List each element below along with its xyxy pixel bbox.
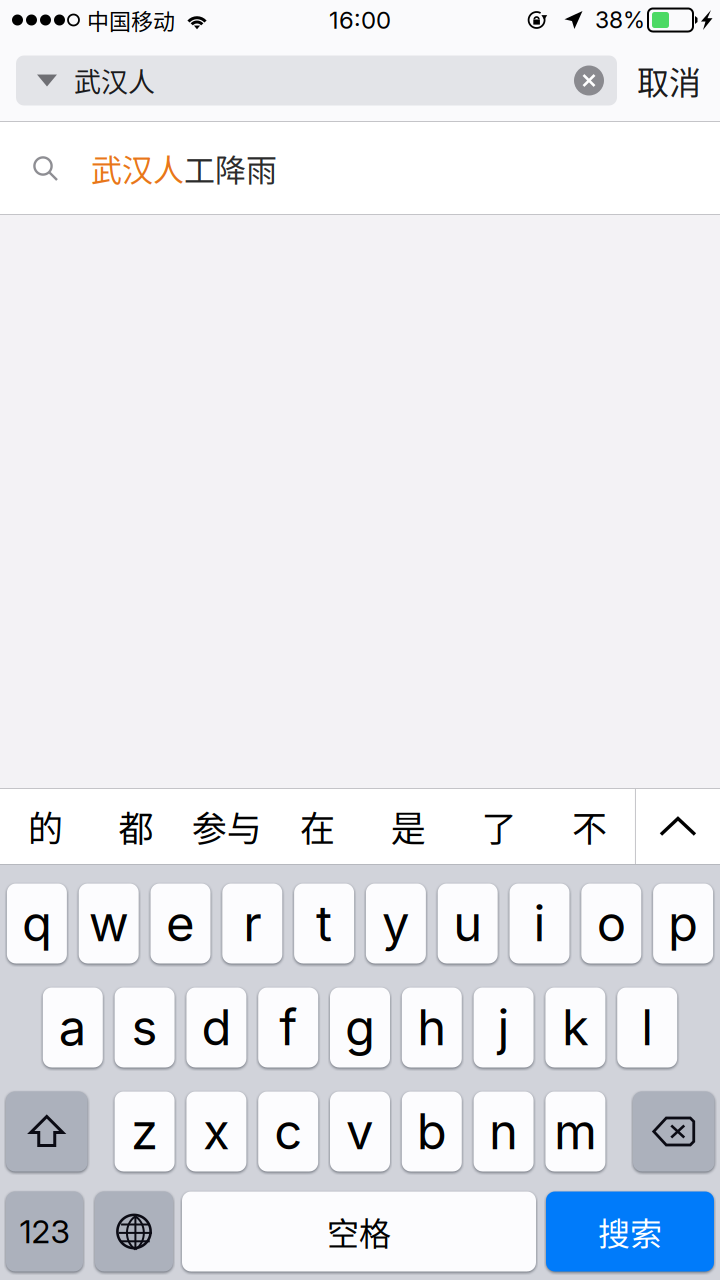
button[interactable]: t (294, 883, 354, 963)
staticText: x (203, 1102, 230, 1161)
staticText: o (597, 894, 626, 953)
staticText: r (243, 894, 261, 953)
button[interactable]: l (617, 987, 677, 1067)
button[interactable]: More candidates (636, 789, 720, 864)
button[interactable]: 不 (544, 789, 635, 864)
button[interactable]: y (366, 883, 426, 963)
button[interactable]: 武汉人 (0, 122, 720, 214)
staticText: g (345, 998, 375, 1057)
button[interactable]: u (438, 883, 498, 963)
button[interactable]: 了 (453, 789, 544, 864)
staticText: c (274, 1102, 302, 1161)
staticText: y (382, 894, 410, 953)
staticText: 不 (572, 801, 607, 852)
button[interactable]: Switch keyboard (95, 1191, 173, 1271)
staticText: 都 (119, 801, 154, 852)
button[interactable]: c (258, 1091, 318, 1171)
staticText: 取消 (637, 57, 701, 104)
staticText: 是 (391, 801, 426, 852)
staticText: 中国移动 (87, 4, 175, 36)
staticText: e (166, 894, 195, 953)
staticText: 在 (300, 801, 335, 852)
button[interactable]: v (330, 1091, 390, 1171)
staticText: 武汉人 (74, 61, 155, 100)
button[interactable]: m (545, 1091, 605, 1171)
staticText: v (346, 1102, 374, 1161)
staticText: p (668, 894, 698, 953)
button[interactable]: 取消 (626, 55, 712, 105)
staticText: j (498, 998, 510, 1057)
staticText: 16:00 (329, 5, 391, 34)
button[interactable]: 是 (363, 789, 453, 864)
button[interactable]: p (653, 883, 713, 963)
staticText: w (89, 894, 129, 953)
staticText: u (453, 894, 482, 953)
staticText: 38% (595, 6, 645, 34)
button[interactable]: 123 (6, 1191, 83, 1271)
button[interactable]: k (545, 987, 605, 1067)
staticText: 的 (28, 801, 63, 852)
staticText: m (554, 1102, 597, 1161)
staticText: b (417, 1102, 447, 1161)
button[interactable]: z (115, 1091, 175, 1171)
staticText: q (22, 894, 52, 953)
button[interactable]: 搜索 (546, 1191, 714, 1271)
button[interactable]: 武汉人 (16, 55, 617, 105)
button[interactable]: 在 (272, 789, 363, 864)
staticText: 工降雨 (184, 146, 277, 190)
button[interactable]: e (150, 883, 210, 963)
staticText: s (132, 998, 158, 1057)
button[interactable]: h (402, 987, 462, 1067)
button[interactable]: b (402, 1091, 462, 1171)
button[interactable]: q (7, 883, 67, 963)
staticText: 123 (19, 1212, 69, 1251)
button[interactable]: 都 (91, 789, 181, 864)
button[interactable]: s (115, 987, 175, 1067)
button[interactable]: Shift (6, 1091, 87, 1171)
button[interactable]: 空格 (182, 1191, 536, 1271)
staticText: 了 (481, 801, 516, 852)
button[interactable]: 参与 (181, 789, 272, 864)
staticText: t (316, 894, 332, 953)
staticText: z (131, 1102, 158, 1161)
staticText: h (417, 998, 446, 1057)
button[interactable]: o (581, 883, 641, 963)
staticText: a (59, 998, 87, 1057)
button[interactable]: x (186, 1091, 246, 1171)
staticText: f (279, 998, 297, 1057)
staticText: d (201, 998, 231, 1057)
staticText: l (641, 998, 653, 1057)
button[interactable]: 的 (0, 789, 91, 864)
staticText: i (533, 894, 545, 953)
staticText: k (562, 998, 589, 1057)
button[interactable]: i (509, 883, 569, 963)
button[interactable]: f (258, 987, 318, 1067)
button[interactable]: n (474, 1091, 534, 1171)
button[interactable]: d (186, 987, 246, 1067)
button[interactable]: w (79, 883, 139, 963)
button[interactable]: j (474, 987, 534, 1067)
staticText: n (489, 1102, 518, 1161)
button[interactable]: Delete (633, 1091, 714, 1171)
button[interactable]: r (222, 883, 282, 963)
staticText: 空格 (327, 1208, 391, 1255)
button[interactable]: a (43, 987, 103, 1067)
staticText: 参与 (192, 801, 262, 852)
button[interactable]: g (330, 987, 390, 1067)
staticText: 武汉人 (91, 146, 184, 190)
staticText: 搜索 (598, 1208, 662, 1255)
